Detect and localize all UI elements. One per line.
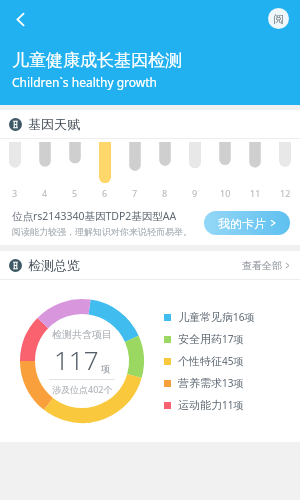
staticText: 9 bbox=[192, 187, 198, 199]
button[interactable]: 安全用药 bbox=[164, 328, 296, 350]
button[interactable]: 个性特征 bbox=[164, 350, 296, 372]
staticText: 阅读能力较强，理解知识对你来说轻而易举。 bbox=[12, 226, 192, 237]
staticText: 12 bbox=[280, 187, 291, 199]
staticText: 儿童健康成长基因检测 bbox=[12, 50, 182, 71]
staticText: 安全用药 bbox=[178, 332, 222, 346]
staticText: Children`s healthy growth bbox=[12, 74, 158, 90]
button[interactable]: 我的卡片 bbox=[204, 211, 290, 235]
button[interactable]: 查看全部 bbox=[242, 259, 291, 272]
staticText: 5 bbox=[72, 187, 78, 199]
staticText: 位点rs2143340基因TDP2基因型AA bbox=[12, 209, 177, 223]
staticText: 13项 bbox=[222, 376, 244, 390]
staticText: 阅 bbox=[273, 12, 284, 26]
button[interactable]: 运动能力 bbox=[164, 394, 296, 416]
staticText: 检测共含项目 bbox=[52, 328, 112, 341]
button[interactable]: 营养需求 bbox=[164, 372, 296, 394]
staticText: 45项 bbox=[222, 354, 244, 368]
staticText: 基因天赋 bbox=[28, 116, 80, 132]
staticText: 16项 bbox=[233, 310, 255, 324]
staticText: 7 bbox=[132, 187, 138, 199]
button[interactable]: Back bbox=[4, 3, 36, 35]
staticText: 查看全部 bbox=[242, 259, 282, 272]
staticText: 营养需求 bbox=[178, 376, 222, 390]
staticText: 6 bbox=[102, 187, 108, 199]
staticText: 10 bbox=[220, 187, 231, 199]
staticText: 项 bbox=[101, 363, 110, 374]
staticText: 3 bbox=[12, 187, 18, 199]
button[interactable]: Read bbox=[268, 8, 289, 29]
staticText: 17项 bbox=[222, 332, 244, 346]
staticText: 我的卡片 bbox=[218, 216, 266, 231]
staticText: 运动能力 bbox=[178, 398, 222, 412]
staticText: 8 bbox=[162, 187, 168, 199]
staticText: 涉及位点402个 bbox=[52, 383, 113, 395]
staticText: 检测总览 bbox=[28, 257, 80, 273]
staticText: 4 bbox=[42, 187, 48, 199]
button[interactable]: 儿童常见病 bbox=[164, 306, 296, 328]
staticText: 11 bbox=[250, 187, 261, 199]
staticText: 117 bbox=[54, 342, 99, 377]
staticText: 11项 bbox=[222, 398, 244, 412]
staticText: 儿童常见病 bbox=[178, 310, 233, 324]
staticText: 个性特征 bbox=[178, 354, 222, 368]
